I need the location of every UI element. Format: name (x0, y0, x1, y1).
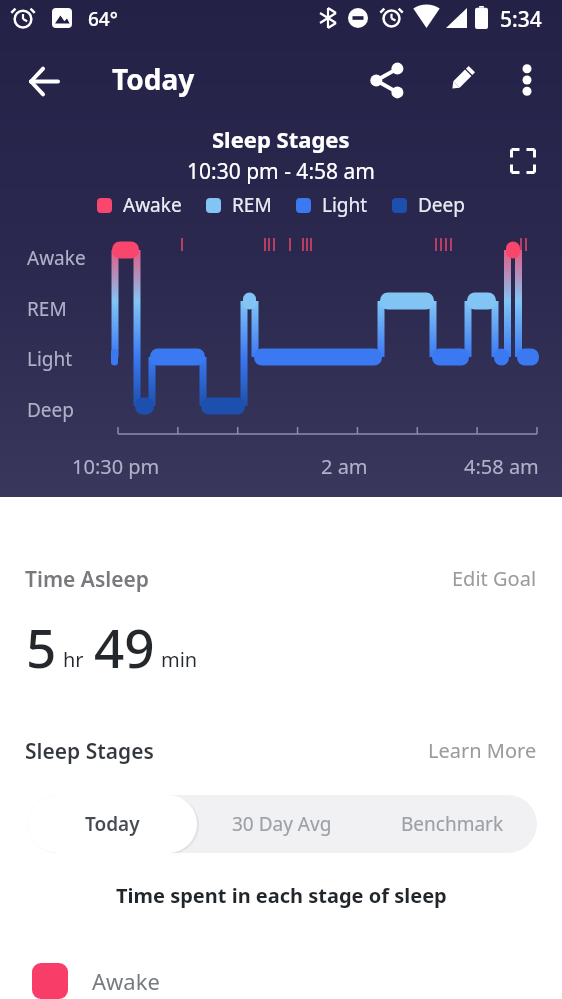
staticText: Sleep Stages (25, 737, 154, 766)
staticText: Time spent in each stage of sleep (116, 882, 447, 909)
staticText: 49 (94, 611, 155, 683)
staticText: 2 am (321, 453, 368, 480)
staticText: REM (27, 296, 67, 322)
staticText: min (161, 646, 198, 673)
staticText: Sleep Stages (212, 124, 350, 154)
button[interactable] (445, 64, 477, 96)
staticText: Time Asleep (25, 565, 149, 594)
staticText: REM (232, 192, 272, 218)
staticText: 30 Day Avg (232, 811, 332, 837)
staticText: 5:34 (500, 5, 542, 34)
staticText: 64° (88, 6, 118, 32)
staticText: Deep (27, 397, 74, 423)
button[interactable]: 30 Day Avg (197, 795, 367, 853)
staticText: 10:30 pm (72, 453, 160, 480)
staticText: hr (63, 646, 84, 673)
staticText: Awake (92, 966, 160, 996)
staticText: Deep (418, 192, 465, 218)
staticText: Awake (123, 192, 182, 218)
button[interactable] (516, 64, 538, 96)
button[interactable] (510, 148, 536, 174)
staticText: Light (27, 346, 73, 372)
button[interactable]: Learn More (428, 737, 537, 764)
staticText: Awake (27, 245, 86, 271)
staticText: 5 (26, 611, 57, 683)
staticText: Light (322, 192, 368, 218)
button[interactable] (371, 64, 404, 97)
button[interactable]: Benchmark (367, 795, 537, 853)
staticText: Today (85, 811, 140, 837)
button[interactable] (30, 67, 59, 96)
staticText: Today (112, 60, 195, 98)
staticText: 4:58 am (464, 453, 539, 480)
staticText: Benchmark (401, 811, 504, 837)
staticText: 10:30 pm - 4:58 am (187, 157, 375, 186)
button[interactable]: Today (28, 795, 197, 853)
button[interactable]: Edit Goal (452, 565, 537, 592)
